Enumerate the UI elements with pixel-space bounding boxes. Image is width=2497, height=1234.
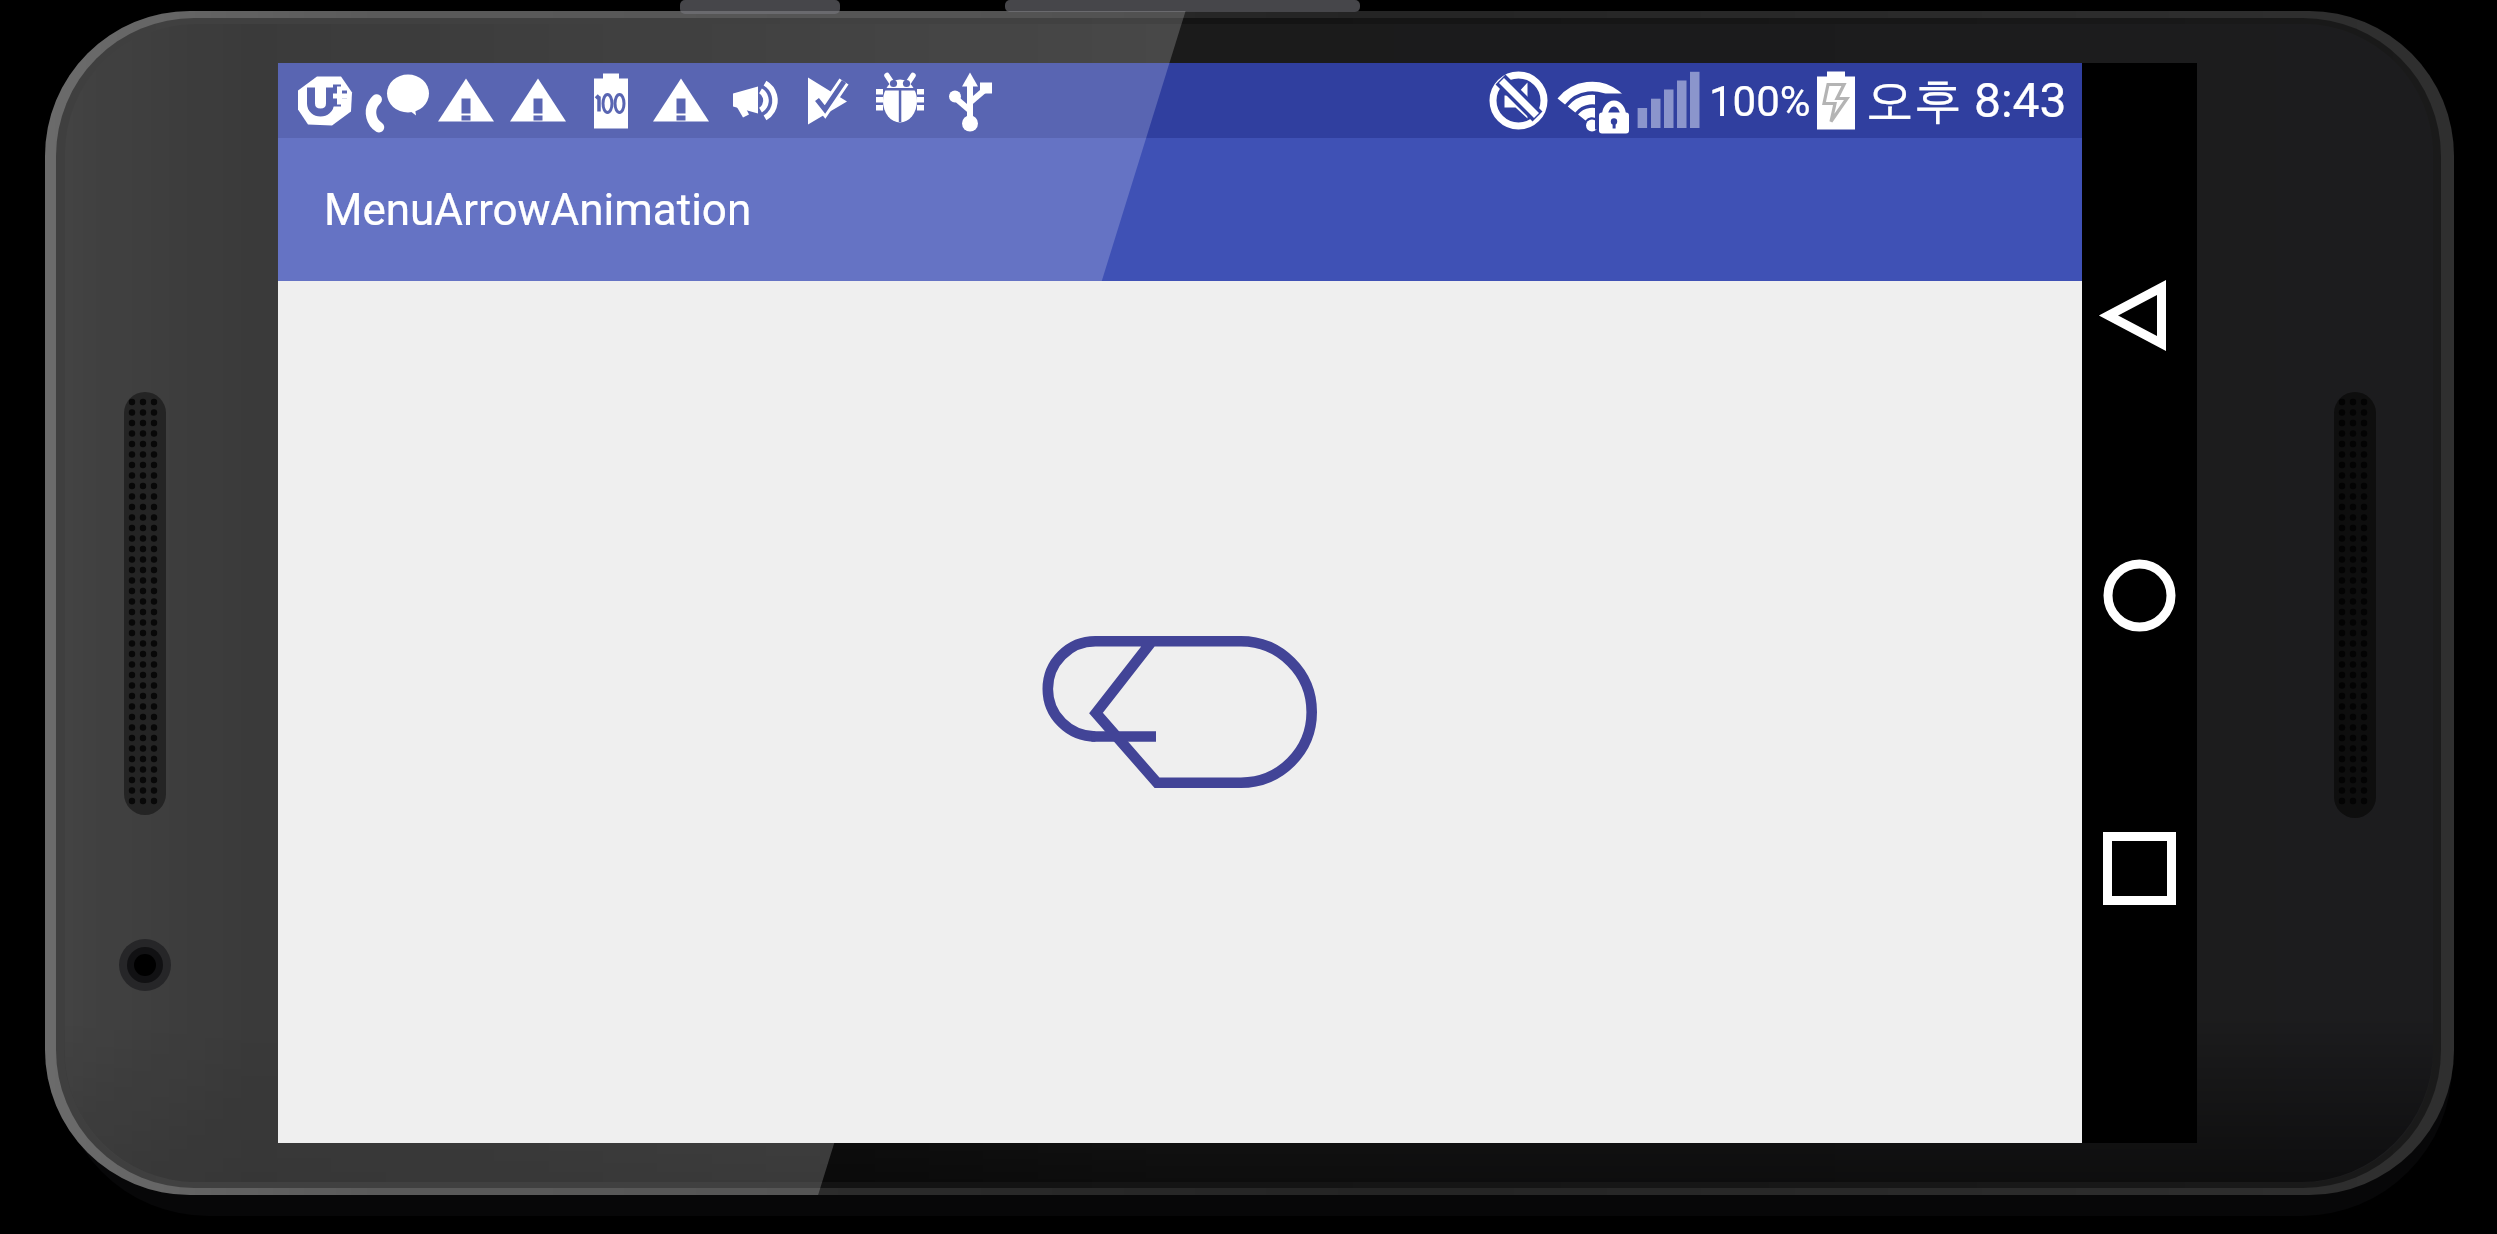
button[interactable]: Home [2082, 538, 2197, 653]
staticText: 100% [1709, 77, 1811, 126]
button[interactable]: Menu arrow animation [1043, 636, 1316, 788]
button[interactable]: Recent apps [2082, 811, 2197, 926]
button[interactable]: Back [2082, 258, 2197, 373]
staticText: 오후 8:43 [1866, 71, 2067, 131]
staticText: MenuArrowAnimation [324, 184, 752, 236]
